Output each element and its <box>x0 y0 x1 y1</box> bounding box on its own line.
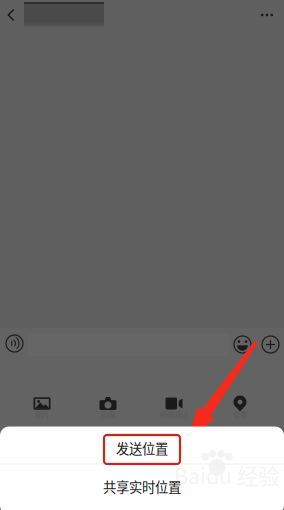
staticText: 发送位置 <box>116 438 168 458</box>
button[interactable]: Back <box>0 2 22 28</box>
staticText: 照片 <box>35 409 49 419</box>
button[interactable]: Voice message <box>1 330 27 356</box>
button[interactable]: 发送位置 <box>0 429 284 466</box>
button[interactable]: 位置 <box>207 395 273 425</box>
button[interactable]: Emoji <box>229 331 255 357</box>
button[interactable]: 共享实时位置 <box>0 465 284 507</box>
staticText: 拍摄 <box>101 409 115 419</box>
staticText: Baidu 经验 <box>174 459 279 490</box>
button[interactable]: More <box>253 2 281 28</box>
staticText: 位置 <box>233 409 247 419</box>
staticText: 视频通话 <box>160 409 188 419</box>
button[interactable]: 拍摄 <box>75 395 141 425</box>
button[interactable]: More actions <box>257 331 283 357</box>
staticText: 共享实时位置 <box>103 477 181 496</box>
button[interactable]: 视频通话 <box>141 395 207 425</box>
button[interactable]: 照片 <box>9 395 75 425</box>
